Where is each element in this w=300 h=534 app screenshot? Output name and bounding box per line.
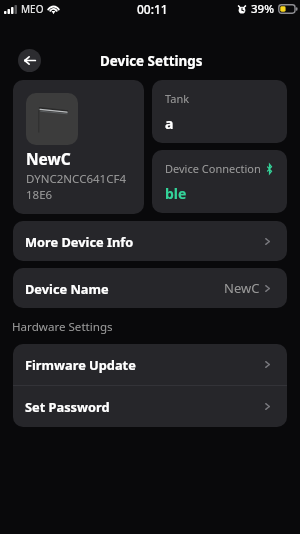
button[interactable]: Set Password xyxy=(13,386,287,427)
staticText: More Device Info xyxy=(25,233,134,250)
staticText: DYNC2NCC641CF418E6 xyxy=(26,171,126,203)
button[interactable]: Device Connection xyxy=(152,150,287,213)
staticText: Device Name xyxy=(25,280,109,297)
staticText: MEO xyxy=(21,2,44,16)
staticText: 39% xyxy=(251,1,274,17)
button[interactable]: NewC xyxy=(13,80,144,214)
button[interactable]: Tank xyxy=(152,80,287,143)
staticText: Tank xyxy=(165,91,190,106)
staticText: 00:11 xyxy=(137,1,168,17)
button[interactable]: Back xyxy=(18,49,41,72)
staticText: Device Settings xyxy=(100,52,203,70)
staticText: NewC xyxy=(26,148,71,169)
button[interactable]: More Device Info xyxy=(13,221,287,261)
staticText: a xyxy=(165,114,174,133)
staticText: NewC xyxy=(224,279,260,297)
button[interactable]: Device Name xyxy=(13,268,287,308)
staticText: Set Password xyxy=(25,398,110,415)
staticText: Firmware Update xyxy=(25,356,136,373)
staticText: Device Connection xyxy=(165,161,261,176)
staticText: ble xyxy=(165,184,187,203)
button[interactable]: Firmware Update xyxy=(13,344,287,385)
staticText: Hardware Settings xyxy=(12,319,113,335)
